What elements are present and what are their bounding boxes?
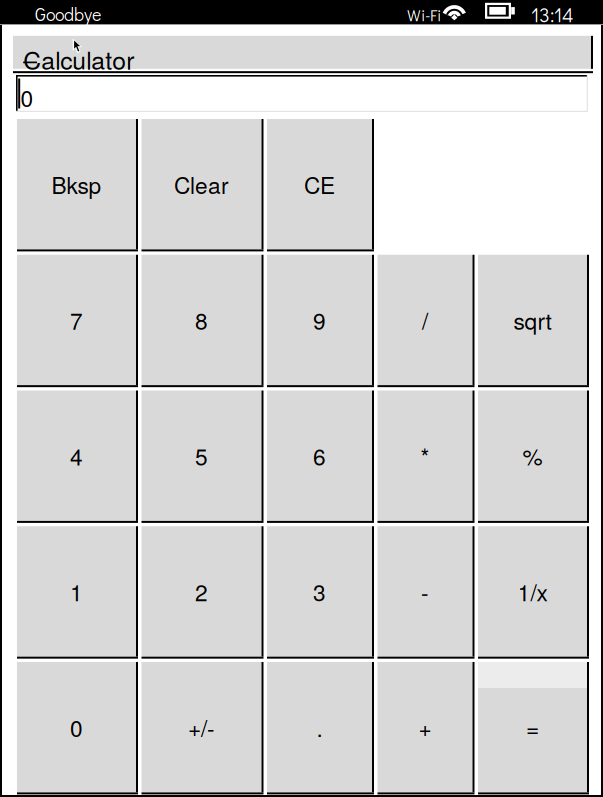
- staticText: 2: [195, 575, 208, 608]
- button[interactable]: 1/x: [478, 526, 587, 657]
- staticText: 4: [70, 439, 83, 472]
- button[interactable]: 4: [17, 390, 136, 521]
- button[interactable]: 5: [141, 390, 261, 521]
- staticText: -: [421, 575, 429, 608]
- button[interactable]: -: [377, 526, 472, 657]
- staticText: 1: [70, 575, 83, 608]
- staticText: 0: [70, 711, 83, 743]
- staticText: =: [526, 711, 539, 743]
- button[interactable]: 7: [17, 255, 136, 385]
- staticText: 7: [70, 304, 83, 336]
- button[interactable]: +: [377, 662, 472, 792]
- staticText: 1/x: [517, 575, 547, 608]
- staticText: CE: [304, 168, 335, 200]
- button[interactable]: %: [478, 390, 587, 521]
- button[interactable]: Clear: [141, 119, 261, 249]
- button[interactable]: Calculator: [13, 36, 591, 71]
- staticText: *: [420, 439, 429, 472]
- button[interactable]: CE: [267, 119, 372, 249]
- button[interactable]: .: [267, 662, 372, 792]
- button[interactable]: 8: [141, 255, 261, 385]
- button[interactable]: =: [478, 662, 587, 792]
- staticText: 0: [20, 81, 33, 113]
- button[interactable]: sqrt: [478, 255, 587, 385]
- staticText: +: [418, 711, 431, 743]
- staticText: +/-: [188, 711, 215, 743]
- staticText: Wi-Fi: [407, 4, 441, 25]
- button[interactable]: +/-: [141, 662, 261, 792]
- staticText: 9: [313, 304, 326, 336]
- staticText: Clear: [174, 168, 229, 200]
- button[interactable]: /: [377, 255, 472, 385]
- button[interactable]: 6: [267, 390, 372, 521]
- staticText: 6: [313, 439, 326, 472]
- button[interactable]: *: [377, 390, 472, 521]
- button[interactable]: 2: [141, 526, 261, 657]
- staticText: 13:14: [531, 1, 573, 28]
- staticText: Goodbye: [35, 2, 101, 26]
- staticText: Bksp: [51, 168, 101, 200]
- staticText: 5: [195, 439, 208, 472]
- button[interactable]: 9: [267, 255, 372, 385]
- staticText: 8: [195, 304, 208, 336]
- button[interactable]: 1: [17, 526, 136, 657]
- button[interactable]: 3: [267, 526, 372, 657]
- staticText: sqrt: [513, 304, 551, 336]
- staticText: %: [522, 439, 542, 472]
- staticText: 3: [313, 575, 326, 608]
- staticText: .: [316, 711, 322, 743]
- staticText: /: [422, 304, 428, 336]
- button[interactable]: Bksp: [17, 119, 136, 249]
- staticText: Calculator: [23, 41, 134, 77]
- button[interactable]: 0: [17, 662, 136, 792]
